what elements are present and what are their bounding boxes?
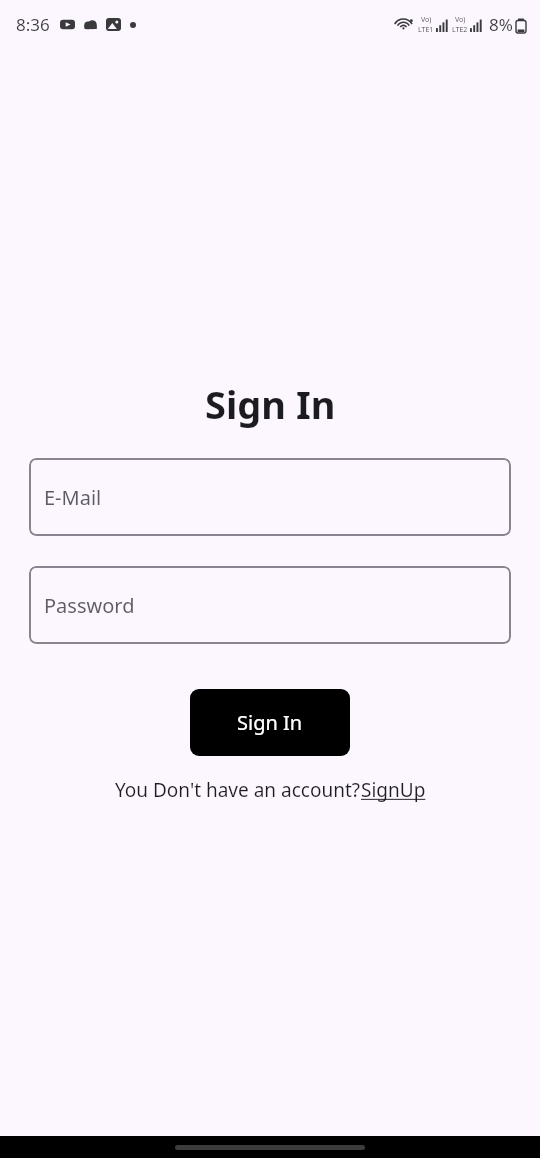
staticText: 8% — [489, 13, 513, 36]
staticText: SignUp — [361, 777, 426, 803]
button[interactable]: SignUp — [361, 777, 426, 803]
staticText: Vo) — [421, 15, 432, 25]
button[interactable]: E-Mail — [29, 458, 511, 536]
staticText: E-Mail — [44, 484, 102, 511]
staticText: You Don't have an account? — [115, 777, 361, 803]
staticText: Sign In — [237, 709, 303, 736]
staticText: LTE1 — [418, 25, 434, 35]
button[interactable]: Password — [29, 566, 511, 644]
button[interactable]: Sign In — [190, 689, 350, 756]
staticText: Vo) — [455, 15, 466, 25]
staticText: Sign In — [205, 378, 336, 430]
staticText: LTE2 — [452, 25, 468, 35]
staticText: Password — [44, 592, 135, 619]
staticText: 8:36 — [16, 13, 50, 36]
other: Home gesture handle — [175, 1145, 365, 1150]
